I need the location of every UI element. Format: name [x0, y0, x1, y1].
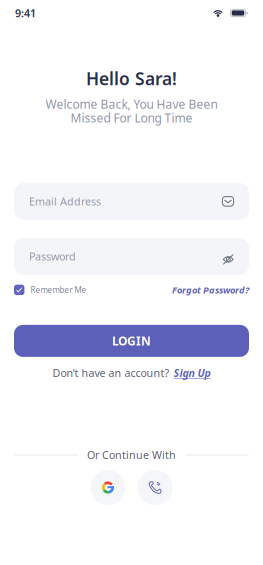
staticText: LOGIN — [112, 333, 151, 349]
staticText: Don't have an account? — [52, 366, 169, 380]
staticText: Email Address — [29, 194, 101, 208]
button[interactable]: Email Address — [14, 183, 249, 220]
staticText: Forgot Password? — [172, 284, 249, 296]
staticText: Sign Up — [173, 366, 210, 380]
button[interactable]: Remember Me — [14, 281, 86, 299]
button[interactable]: Don't have an account? — [52, 366, 210, 380]
button[interactable]: Forgot Password? — [172, 281, 249, 299]
button[interactable]: Continue with phone — [137, 470, 172, 505]
button[interactable]: Password — [14, 238, 249, 275]
staticText: Remember Me — [30, 285, 86, 295]
staticText: 9:41 — [15, 6, 36, 20]
staticText: Hello Sara! — [86, 67, 177, 90]
button[interactable]: LOGIN — [14, 325, 249, 357]
button[interactable]: Continue with Google — [90, 470, 125, 505]
staticText: Welcome Back, You Have Been — [45, 96, 217, 112]
staticText: Or Continue With — [87, 448, 176, 462]
staticText: Password — [29, 249, 76, 263]
staticText: Missed For Long Time — [70, 110, 192, 126]
